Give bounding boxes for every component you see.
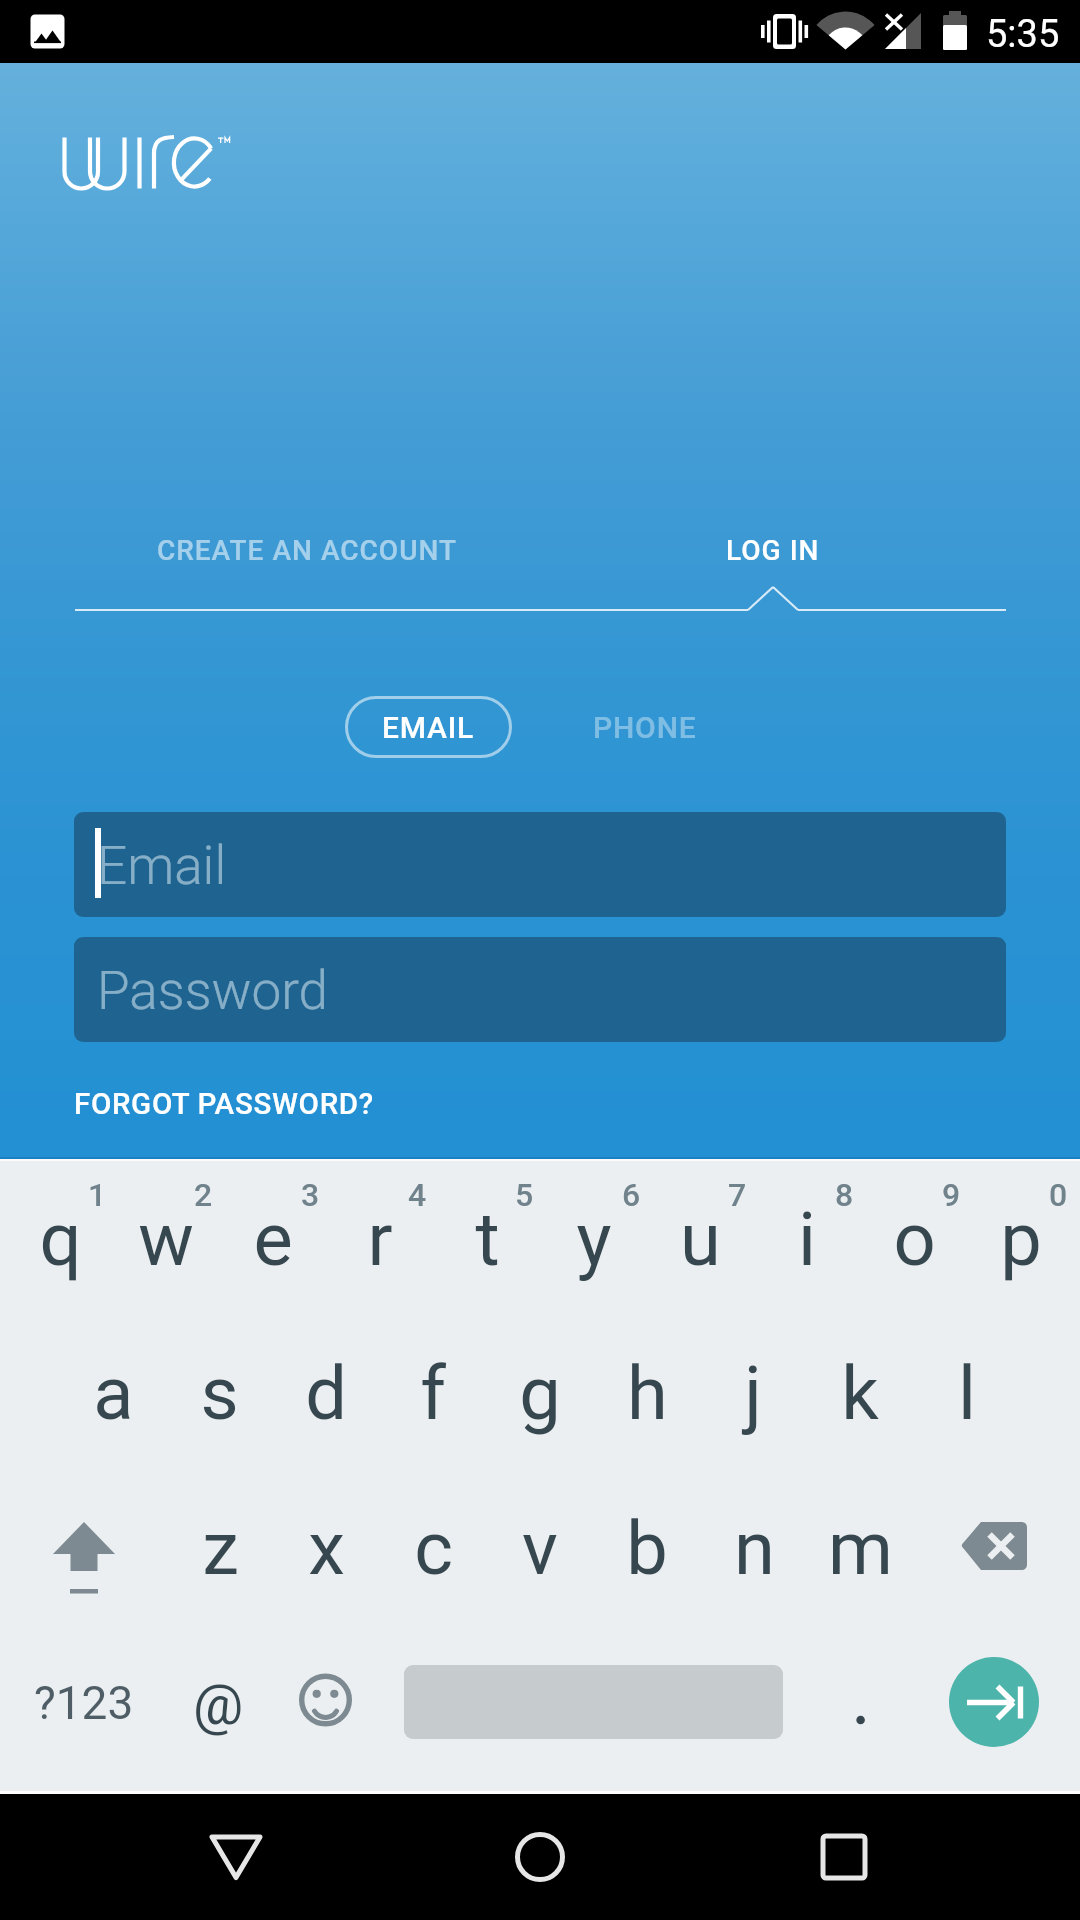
button[interactable]: LOG IN xyxy=(503,502,1043,598)
staticText: w xyxy=(138,1196,194,1283)
staticText: 7 xyxy=(728,1176,747,1214)
button[interactable]: y xyxy=(534,1177,654,1301)
button[interactable]: Next xyxy=(949,1657,1039,1747)
button[interactable]: Password xyxy=(74,937,1006,1042)
button[interactable]: a xyxy=(53,1331,173,1455)
button[interactable]: x xyxy=(266,1486,386,1610)
button[interactable]: o xyxy=(854,1177,974,1301)
staticText: 4 xyxy=(408,1176,427,1214)
staticText: c xyxy=(414,1505,453,1592)
button[interactable]: z xyxy=(160,1486,280,1610)
staticText: EMAIL xyxy=(382,710,475,745)
staticText: x xyxy=(308,1505,345,1592)
button[interactable]: b xyxy=(587,1486,707,1610)
staticText: i xyxy=(798,1196,816,1283)
staticText: h xyxy=(627,1350,668,1437)
staticText: Email xyxy=(97,835,227,897)
button[interactable]: p xyxy=(961,1177,1080,1301)
staticText: PHONE xyxy=(593,710,697,745)
staticText: v xyxy=(522,1505,558,1592)
staticText: e xyxy=(253,1196,293,1283)
button[interactable]: w xyxy=(106,1177,226,1301)
staticText: 1 xyxy=(88,1176,107,1214)
staticText: b xyxy=(626,1505,668,1592)
button[interactable]: FORGOT PASSWORD? xyxy=(74,1076,374,1132)
button[interactable]: PHONE xyxy=(560,696,730,758)
staticText: p xyxy=(1000,1196,1042,1283)
button[interactable]: EMAIL xyxy=(345,696,512,758)
staticText: a xyxy=(93,1350,134,1437)
staticText: f xyxy=(420,1350,446,1437)
staticText: Password xyxy=(97,960,328,1022)
button[interactable]: c xyxy=(373,1486,493,1610)
staticText: 6 xyxy=(622,1176,641,1214)
staticText: 2 xyxy=(194,1176,213,1214)
staticText: t xyxy=(475,1196,500,1283)
button[interactable]: Back xyxy=(176,1817,296,1897)
staticText: z xyxy=(202,1505,239,1592)
button[interactable]: q xyxy=(0,1177,120,1301)
staticText: o xyxy=(893,1196,936,1283)
staticText: s xyxy=(200,1350,239,1437)
button[interactable]: Period xyxy=(800,1658,920,1782)
button[interactable]: f xyxy=(373,1331,493,1455)
button[interactable]: Shift xyxy=(24,1495,144,1619)
staticText: u xyxy=(680,1196,721,1283)
button[interactable]: k xyxy=(800,1331,920,1455)
button[interactable]: n xyxy=(694,1486,814,1610)
staticText: k xyxy=(841,1350,879,1437)
button[interactable]: l xyxy=(907,1331,1027,1455)
staticText: 8 xyxy=(835,1176,854,1214)
button[interactable]: ?123 xyxy=(19,1641,149,1765)
staticText: j xyxy=(744,1350,762,1437)
button[interactable]: Home xyxy=(480,1817,600,1897)
staticText: @ xyxy=(193,1672,244,1738)
staticText: ?123 xyxy=(34,1676,134,1730)
button[interactable]: u xyxy=(640,1177,760,1301)
button[interactable]: Recents xyxy=(784,1817,904,1897)
staticText: LOG IN xyxy=(726,534,820,567)
button[interactable]: i xyxy=(747,1177,867,1301)
staticText: q xyxy=(39,1196,82,1283)
button[interactable]: h xyxy=(587,1331,707,1455)
button[interactable]: Backspace xyxy=(955,1511,1041,1583)
staticText: CREATE AN ACCOUNT xyxy=(157,534,457,567)
staticText: y xyxy=(576,1196,612,1283)
button[interactable]: Email xyxy=(74,812,1006,917)
button[interactable]: e xyxy=(213,1177,333,1301)
button[interactable]: t xyxy=(427,1177,547,1301)
staticText: 5 xyxy=(515,1176,534,1214)
staticText: n xyxy=(734,1505,775,1592)
button[interactable]: m xyxy=(800,1486,920,1610)
staticText: 5:35 xyxy=(986,12,1060,57)
button[interactable]: g xyxy=(480,1331,600,1455)
button[interactable]: r xyxy=(320,1177,440,1301)
button[interactable]: Emoji xyxy=(267,1641,387,1765)
staticText: 9 xyxy=(942,1176,961,1214)
button[interactable]: CREATE AN ACCOUNT xyxy=(37,502,577,598)
button[interactable]: j xyxy=(693,1331,813,1455)
staticText: m xyxy=(828,1505,893,1592)
staticText: d xyxy=(305,1350,347,1437)
staticText: 3 xyxy=(301,1176,320,1214)
button[interactable]: d xyxy=(266,1331,386,1455)
button[interactable]: v xyxy=(480,1486,600,1610)
staticText: l xyxy=(958,1350,976,1437)
staticText: r xyxy=(367,1196,393,1283)
button[interactable]: @ xyxy=(158,1643,278,1767)
staticText: 0 xyxy=(1049,1176,1068,1214)
staticText: FORGOT PASSWORD? xyxy=(74,1087,374,1122)
staticText: g xyxy=(519,1350,561,1437)
button[interactable]: s xyxy=(159,1331,279,1455)
